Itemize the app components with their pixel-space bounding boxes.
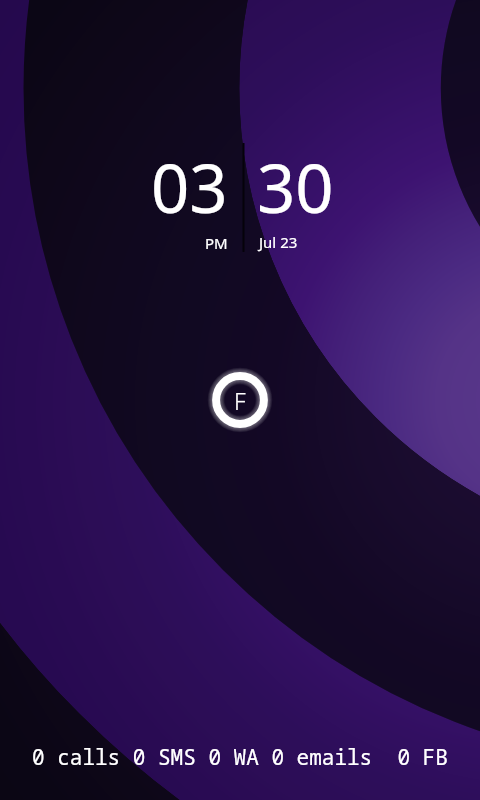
staticText: 0 calls 0 SMS 0 WA 0 emails 0 FB <box>32 743 448 772</box>
staticText: F <box>234 385 246 416</box>
button[interactable]: Unlock <box>200 360 280 440</box>
staticText: 03 <box>151 141 228 232</box>
staticText: 30 <box>257 141 334 232</box>
staticText: Jul 23 <box>259 232 298 252</box>
staticText: PM <box>205 233 228 253</box>
